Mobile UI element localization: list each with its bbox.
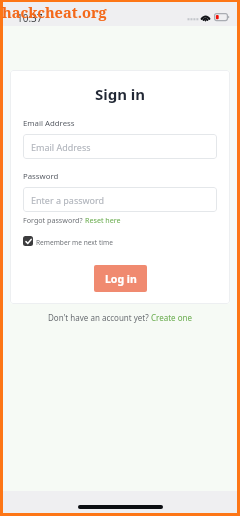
button[interactable]: Remember me next time <box>23 237 113 247</box>
button[interactable]: Log in <box>94 265 147 292</box>
other: Home <box>78 505 163 509</box>
staticText: Email Address <box>31 141 91 153</box>
button[interactable]: Reset here <box>85 215 121 225</box>
button[interactable]: Create one <box>151 312 192 323</box>
staticText: Don't have an account yet? <box>48 312 151 323</box>
staticText: Email Address <box>23 118 75 129</box>
staticText: Forgot password? <box>23 215 85 225</box>
staticText: Sign in <box>23 84 217 104</box>
staticText: Enter a password <box>31 194 105 206</box>
staticText: Password <box>23 171 59 182</box>
staticText: 10:37 <box>17 11 43 25</box>
button[interactable]: Enter a password <box>23 187 217 212</box>
staticText: Log in <box>105 272 137 286</box>
staticText: Remember me next time <box>36 238 113 247</box>
button[interactable]: Email Address <box>23 134 217 159</box>
staticText: hackcheat.org <box>2 2 107 22</box>
